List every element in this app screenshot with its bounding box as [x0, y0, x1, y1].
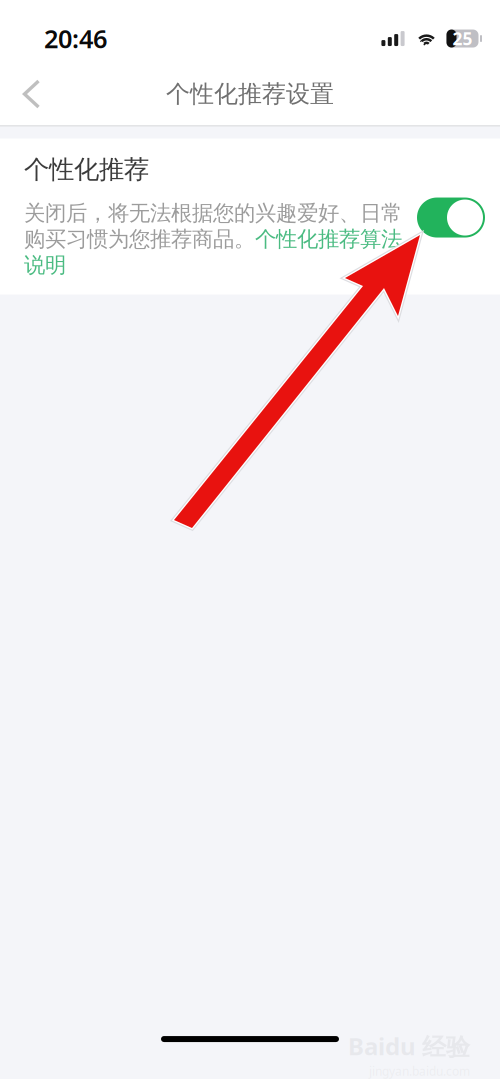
button[interactable]: Personalised recommendations — [417, 197, 485, 237]
staticText: 购买习惯为您推荐商品。 — [24, 226, 255, 252]
staticText: 个性化推荐 — [24, 154, 149, 185]
button[interactable]: 说明 — [24, 252, 66, 277]
staticText: 个性化推荐设置 — [166, 79, 334, 109]
staticText: Baidu 经验 — [348, 1030, 470, 1062]
staticText: 25 — [452, 27, 472, 50]
staticText: 关闭后，将无法根据您的兴趣爱好、日常 — [24, 200, 402, 226]
staticText: 20:46 — [44, 22, 107, 55]
button[interactable]: 个性化推荐算法 — [255, 226, 402, 252]
staticText: 个性化推荐算法 — [255, 226, 402, 252]
button[interactable]: Back — [8, 70, 56, 118]
staticText: 说明 — [24, 252, 66, 278]
